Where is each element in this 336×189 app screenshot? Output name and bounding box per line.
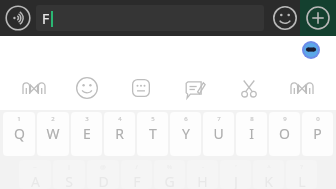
staticText: 0 <box>316 115 320 123</box>
staticText: 8 <box>250 115 254 123</box>
button[interactable]: Sticker <box>121 68 161 108</box>
button[interactable]: 6 <box>170 112 201 156</box>
button[interactable]: Bitmoji 2 <box>282 68 322 108</box>
staticText: A <box>31 172 40 189</box>
button[interactable]: 0 <box>302 112 333 156</box>
button[interactable]: Voice message <box>4 4 32 32</box>
staticText: P <box>313 124 322 143</box>
button[interactable]: 7 <box>203 112 234 156</box>
button[interactable]: 2 <box>37 112 69 156</box>
staticText: 6 <box>184 115 188 123</box>
staticText: 4 <box>118 115 122 123</box>
staticText: R <box>115 124 124 143</box>
button[interactable]: Add <box>300 0 336 36</box>
staticText: E <box>83 124 91 143</box>
staticText: W <box>46 124 60 143</box>
button[interactable]: 5 <box>137 112 168 156</box>
button[interactable]: Scissors <box>229 68 269 108</box>
staticText: U <box>213 124 224 143</box>
staticText: 7 <box>217 115 221 123</box>
button[interactable]: F <box>36 5 264 31</box>
staticText: 5 <box>151 115 155 123</box>
staticText: T <box>149 124 157 143</box>
button[interactable]: 4 <box>104 112 135 156</box>
staticText: O <box>279 124 290 143</box>
staticText: Q <box>14 124 25 143</box>
button[interactable]: Avatar <box>302 41 320 59</box>
staticText: K <box>264 172 273 189</box>
staticText: 2 <box>51 115 55 123</box>
button[interactable]: 1 <box>3 112 35 156</box>
button[interactable]: Bitmoji <box>14 68 54 108</box>
staticText: S <box>65 172 73 189</box>
staticText: F <box>133 172 141 189</box>
button[interactable]: Emoji <box>270 3 300 33</box>
staticText: 3 <box>85 115 89 123</box>
staticText: F <box>42 9 50 28</box>
staticText: Y <box>182 124 190 143</box>
button[interactable]: Draw <box>175 68 215 108</box>
staticText: 9 <box>283 115 287 123</box>
button[interactable]: 9 <box>269 112 300 156</box>
staticText: J <box>234 172 238 189</box>
staticText: I <box>249 124 254 143</box>
staticText: L <box>298 172 306 189</box>
staticText: D <box>98 172 109 189</box>
staticText: H <box>197 172 208 189</box>
button[interactable]: 3 <box>71 112 102 156</box>
button[interactable]: Emoji <box>67 68 107 108</box>
button[interactable]: 8 <box>236 112 267 156</box>
staticText: G <box>164 172 175 189</box>
staticText: 1 <box>17 115 21 123</box>
